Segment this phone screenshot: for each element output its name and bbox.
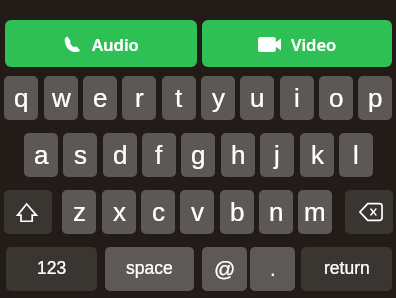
button[interactable]: v <box>180 190 214 234</box>
staticText: w <box>52 83 71 112</box>
button[interactable]: i <box>280 76 314 120</box>
staticText: b <box>230 197 245 226</box>
button[interactable]: z <box>62 190 96 234</box>
button[interactable]: h <box>221 133 255 177</box>
button[interactable]: x <box>102 190 136 234</box>
staticText: return <box>324 258 370 278</box>
other: Shift <box>17 203 37 222</box>
button[interactable]: t <box>162 76 196 120</box>
staticText: j <box>274 140 280 169</box>
staticText: 123 <box>37 258 67 278</box>
button[interactable]: Video <box>202 20 392 67</box>
button[interactable]: 123 <box>6 247 97 291</box>
staticText: c <box>152 197 165 226</box>
button[interactable]: Backspace <box>345 190 393 234</box>
staticText: Audio <box>92 33 139 55</box>
staticText: space <box>126 258 173 278</box>
button[interactable]: g <box>181 133 215 177</box>
button[interactable]: p <box>358 76 392 120</box>
button[interactable]: s <box>63 133 97 177</box>
button[interactable]: e <box>83 76 117 120</box>
staticText: f <box>155 140 163 169</box>
button[interactable]: q <box>4 76 38 120</box>
staticText: y <box>212 83 225 112</box>
staticText: n <box>269 197 284 226</box>
staticText: q <box>14 83 29 112</box>
staticText: t <box>175 83 183 112</box>
button[interactable]: b <box>220 190 254 234</box>
staticText: a <box>34 140 49 169</box>
button[interactable]: d <box>103 133 137 177</box>
button[interactable]: f <box>142 133 176 177</box>
staticText: i <box>294 83 300 112</box>
button[interactable]: m <box>298 190 332 234</box>
staticText: Video <box>291 33 337 55</box>
button[interactable]: l <box>339 133 373 177</box>
button[interactable]: c <box>141 190 175 234</box>
button[interactable]: n <box>259 190 293 234</box>
button[interactable]: r <box>122 76 156 120</box>
staticText: u <box>250 83 265 112</box>
button[interactable]: a <box>24 133 58 177</box>
staticText: l <box>353 140 359 169</box>
button[interactable]: Shift <box>4 190 52 234</box>
button[interactable]: Audio <box>5 20 197 67</box>
staticText: r <box>135 83 144 112</box>
staticText: m <box>304 197 326 226</box>
other: Backspace <box>359 203 383 221</box>
staticText: e <box>93 83 108 112</box>
staticText: s <box>74 140 87 169</box>
button[interactable]: j <box>260 133 294 177</box>
staticText: . <box>270 257 276 280</box>
button[interactable]: @ <box>202 247 247 291</box>
button[interactable]: o <box>319 76 353 120</box>
staticText: h <box>231 140 246 169</box>
button[interactable]: return <box>301 247 392 291</box>
staticText: @ <box>214 257 236 280</box>
button[interactable]: w <box>44 76 78 120</box>
staticText: z <box>73 197 86 226</box>
staticText: p <box>368 83 383 112</box>
button[interactable]: . <box>250 247 295 291</box>
staticText: k <box>311 140 324 169</box>
staticText: x <box>113 197 126 226</box>
staticText: d <box>113 140 128 169</box>
button[interactable]: space <box>105 247 194 291</box>
button[interactable]: k <box>300 133 334 177</box>
staticText: o <box>329 83 344 112</box>
button[interactable]: u <box>240 76 274 120</box>
staticText: g <box>191 140 206 169</box>
staticText: v <box>191 197 204 226</box>
button[interactable]: y <box>201 76 235 120</box>
